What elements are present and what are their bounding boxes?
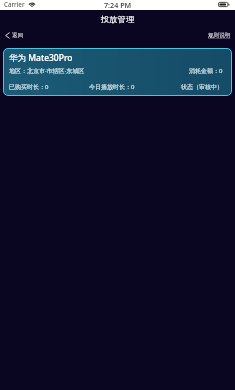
staticText: 返回 [12, 32, 24, 39]
staticText: 地区：北京市·市辖区·东城区 [9, 67, 85, 75]
staticText: 7:24 PM [104, 0, 132, 10]
staticText: 今日播放时长：0 [89, 83, 135, 91]
staticText: 华为 Mate30Pro [9, 52, 73, 64]
staticText: 规则说明 [208, 32, 231, 39]
staticText: 投放管理 [101, 14, 135, 24]
button[interactable]: 规则说明 [207, 30, 232, 41]
staticText: 状态（审核中） [181, 83, 223, 91]
staticText: 已购买时长：0 [9, 83, 49, 91]
staticText: Carrier [4, 0, 25, 8]
button[interactable]: 返回 [4, 30, 25, 41]
staticText: 消耗金额：0 [189, 67, 223, 75]
button[interactable]: 华为 Mate30Pro [3, 48, 232, 96]
